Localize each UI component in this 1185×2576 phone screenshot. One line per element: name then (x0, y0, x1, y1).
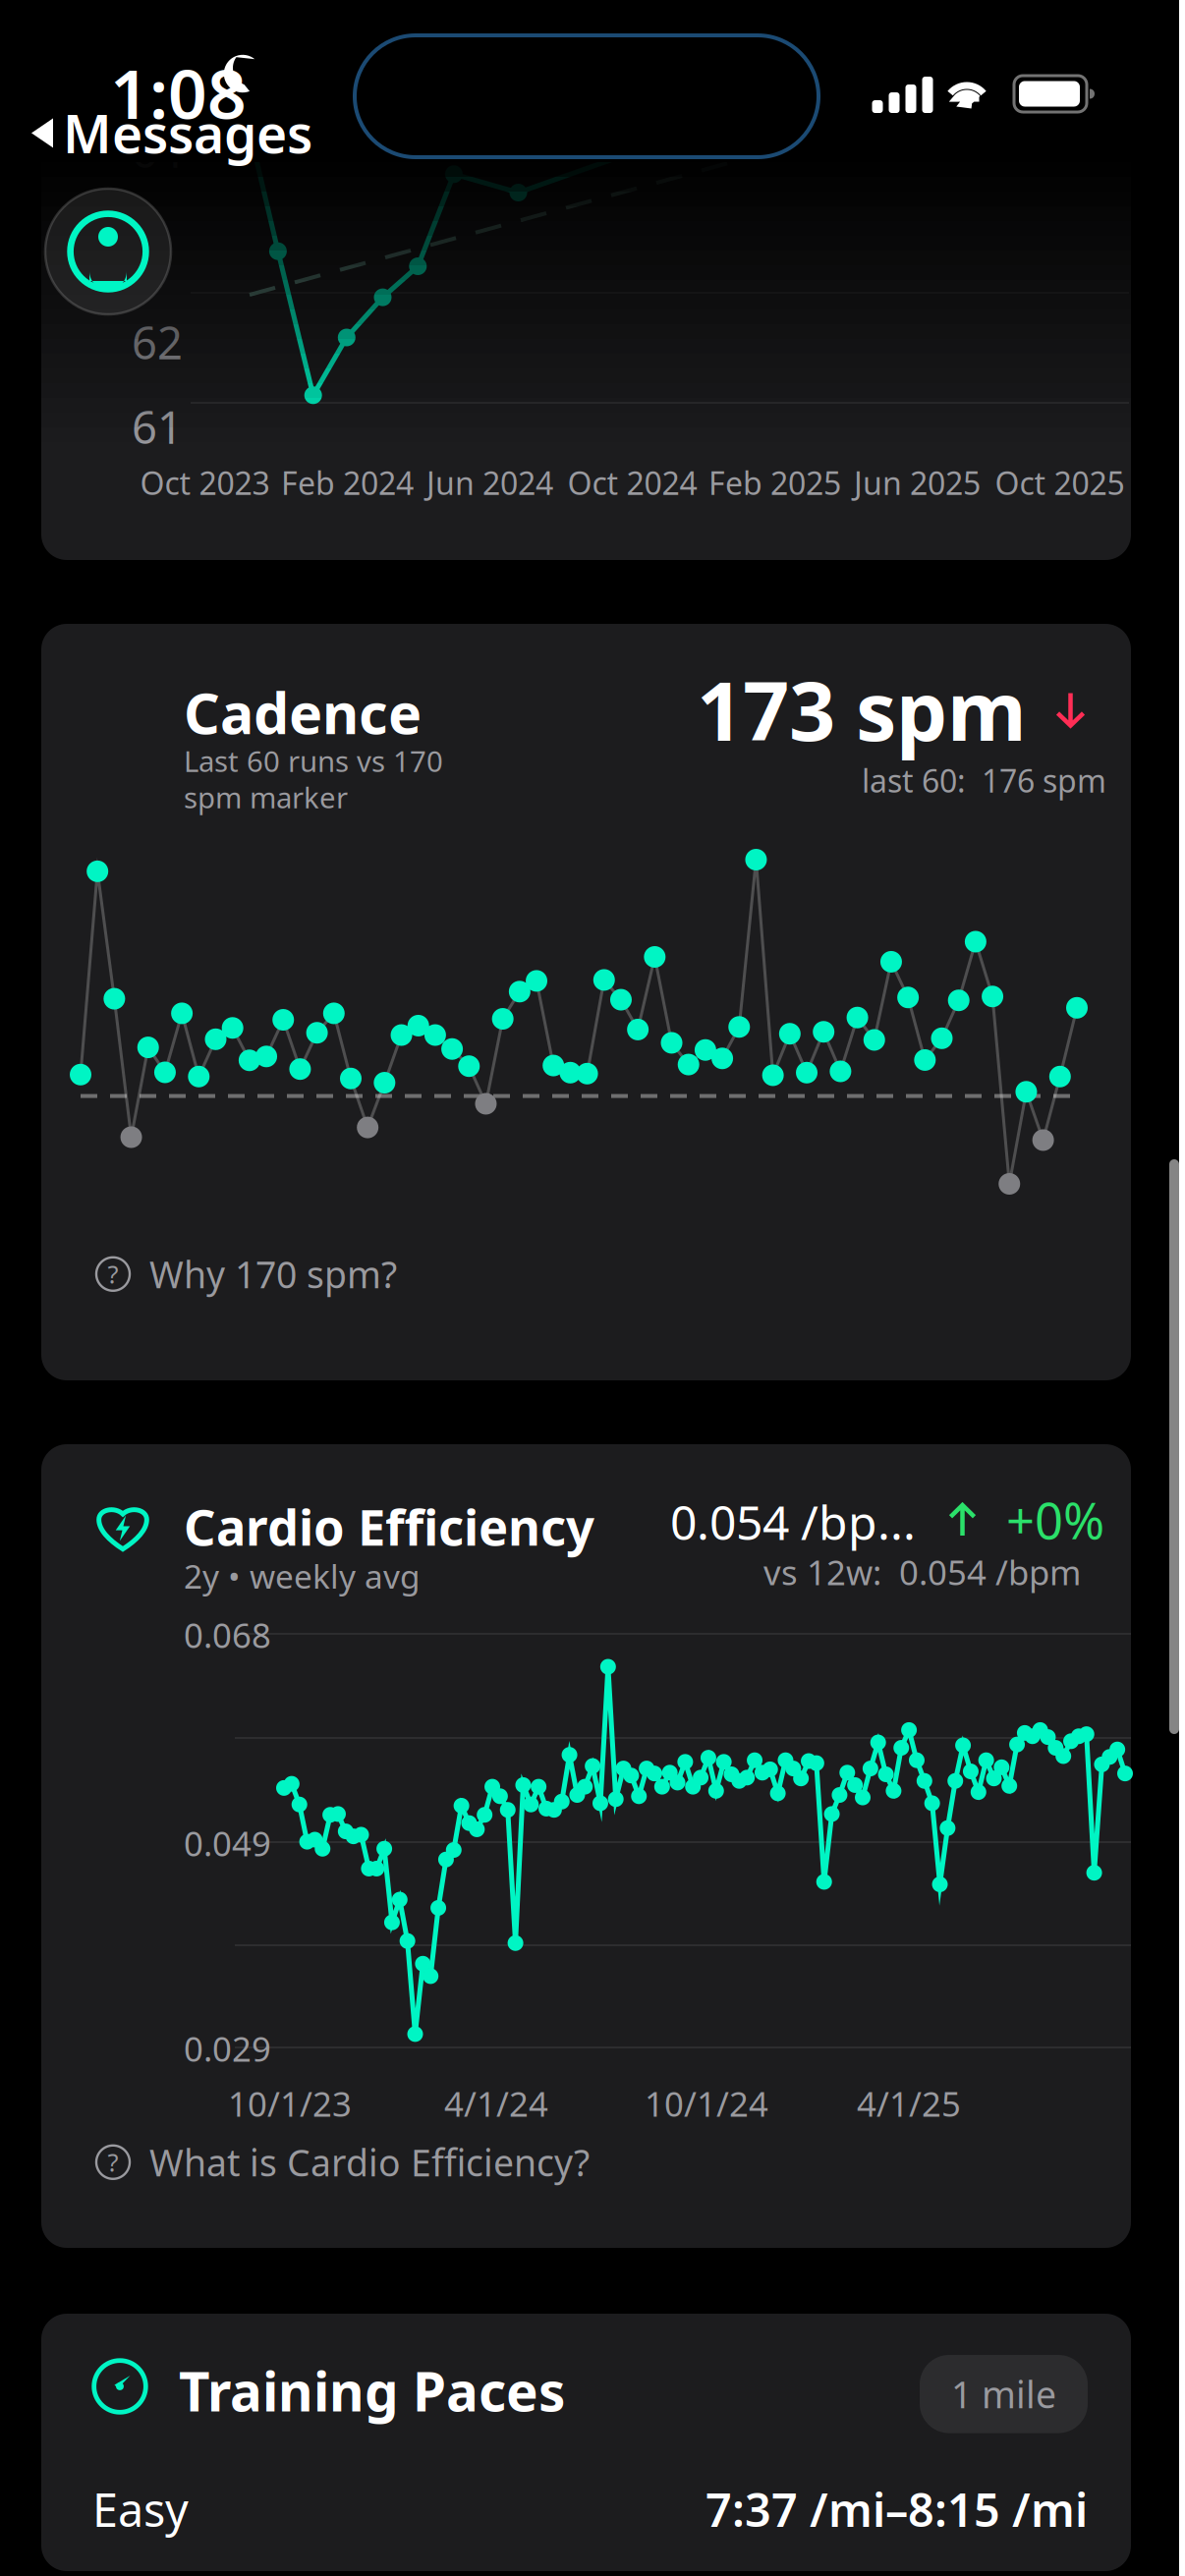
staticText: Jun 2024 (426, 462, 553, 504)
staticText: Oct 2023 (140, 462, 270, 504)
staticText: 10/1/24 (645, 2081, 768, 2126)
staticText: 62 (132, 312, 183, 372)
staticText: 61 (132, 397, 183, 456)
staticText: Oct 2025 (995, 462, 1125, 504)
staticText: vs 12w: 0.054 /bpm (763, 1549, 1081, 1595)
button[interactable]: Messages (0, 0, 312, 168)
staticText: 1 mile (951, 2370, 1056, 2418)
staticText: Last 60 runs vs 170 (184, 742, 443, 780)
staticText: 4/1/24 (444, 2081, 548, 2126)
staticText: Cadence (184, 675, 422, 750)
staticText: ? (108, 1258, 118, 1291)
staticText: 2y • weekly avg (184, 1554, 421, 1598)
button[interactable]: 1 mile (920, 2355, 1088, 2433)
staticText: Training Paces (179, 2355, 565, 2426)
staticText: Oct 2024 (567, 462, 697, 504)
staticText: 0.054 /bp... (670, 1490, 916, 1553)
staticText: 0.068 (184, 1612, 271, 1657)
staticText: Cardio Efficiency (184, 1493, 594, 1559)
staticText: 4/1/25 (857, 2081, 961, 2126)
staticText: spm marker (184, 778, 348, 816)
staticText: Why 170 spm? (149, 1250, 397, 1298)
staticText: 0.049 (184, 1820, 271, 1866)
staticText: last 60: 176 spm (862, 759, 1106, 801)
button[interactable]: Profile (0, 0, 171, 314)
staticText: Feb 2025 (708, 462, 841, 504)
staticText: ? (108, 2146, 118, 2179)
staticText: 0.029 (184, 2026, 271, 2071)
staticText: Jun 2025 (854, 462, 981, 504)
staticText: 173 spm (697, 655, 1027, 763)
staticText: +0% (1006, 1487, 1104, 1553)
staticText: Easy (92, 2479, 189, 2540)
staticText: 64 (132, 121, 183, 180)
staticText: 1:08 (110, 47, 247, 138)
staticText: 7:37 /mi–8:15 /mi (705, 2479, 1088, 2540)
staticText: What is Cardio Efficiency? (149, 2138, 590, 2187)
staticText: 66 (132, 22, 183, 81)
staticText: Messages (63, 98, 312, 168)
button[interactable]: ? (41, 1444, 590, 2187)
staticText: Feb 2024 (281, 462, 414, 504)
button[interactable]: ? (41, 624, 397, 1298)
staticText: 10/1/23 (228, 2081, 352, 2126)
